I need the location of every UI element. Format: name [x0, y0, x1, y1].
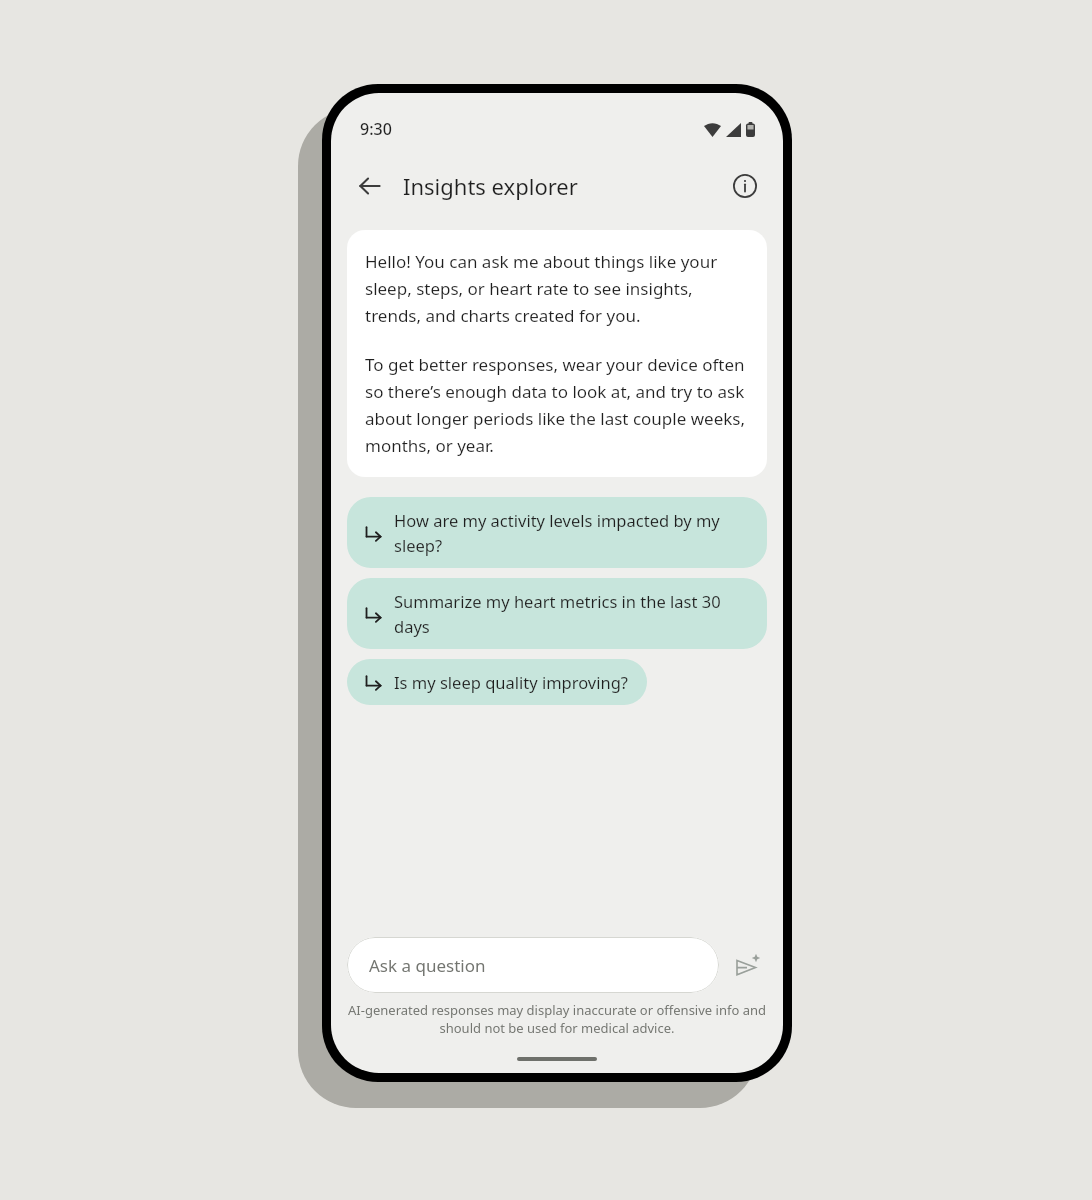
button[interactable]: How are my activity levels impacted by m…	[347, 497, 767, 568]
button[interactable]: Summarize my heart metrics in the last 3…	[347, 578, 767, 649]
staticText: 9:30	[360, 118, 392, 140]
button[interactable]: Is my sleep quality improving?	[347, 659, 647, 705]
staticText: Hello! You can ask me about things like …	[365, 250, 749, 327]
button[interactable]: Send	[725, 943, 769, 987]
staticText: Ask a question	[369, 954, 486, 977]
staticText: AI-generated responses may display inacc…	[345, 1001, 769, 1037]
staticText: Is my sleep quality improving?	[394, 671, 629, 693]
staticText: How are my activity levels impacted by m…	[394, 509, 749, 556]
staticText: Summarize my heart metrics in the last 3…	[394, 590, 749, 637]
button[interactable]: Info	[723, 164, 767, 208]
button[interactable]: Hello! You can ask me about things like …	[347, 230, 767, 477]
button[interactable]: Back	[347, 163, 393, 209]
button[interactable]: Ask a question	[347, 937, 719, 993]
staticText: Insights explorer	[403, 171, 578, 201]
staticText: To get better responses, wear your devic…	[365, 353, 749, 457]
